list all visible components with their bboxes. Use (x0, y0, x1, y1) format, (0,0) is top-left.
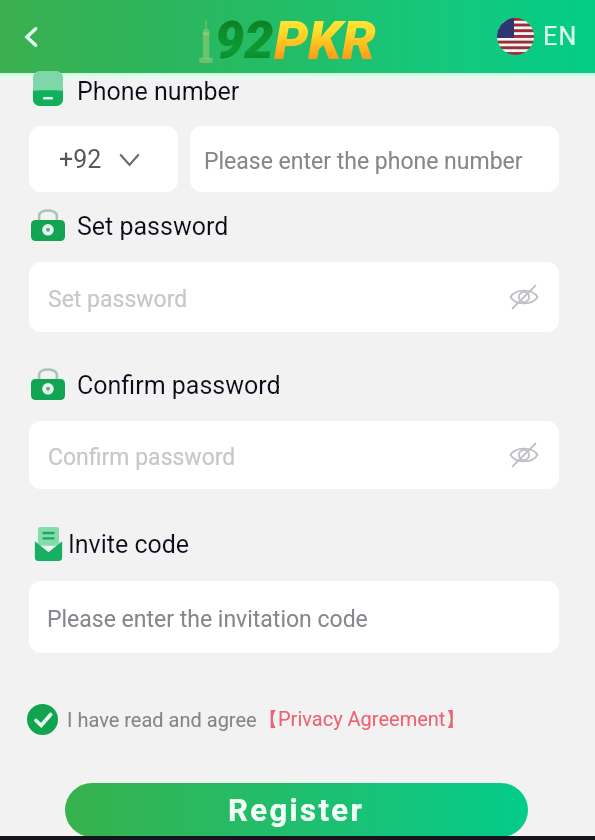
staticText: Register (228, 792, 365, 828)
button[interactable]: EN (497, 18, 578, 55)
button[interactable]: +92 (29, 126, 178, 192)
staticText: +92 (59, 145, 102, 174)
button[interactable]: Please enter the invitation code (29, 581, 559, 653)
button[interactable]: Register (65, 783, 528, 837)
button[interactable]: Confirm password (29, 421, 559, 489)
button[interactable]: 【Privacy Agreement】 (258, 707, 466, 732)
button[interactable]: Toggle password visibility (507, 280, 541, 314)
staticText: Set password (48, 286, 188, 313)
staticText: Set password (77, 212, 229, 241)
button[interactable]: I have read and agree (27, 704, 466, 735)
staticText: I have read and agree (67, 708, 257, 731)
button[interactable]: Toggle password visibility (507, 438, 541, 472)
staticText: Confirm password (48, 444, 236, 471)
staticText: Phone number (77, 77, 240, 106)
staticText: Please enter the invitation code (47, 606, 368, 633)
button[interactable]: Please enter the phone number (190, 126, 559, 192)
staticText: EN (543, 22, 578, 51)
staticText: PKR (274, 9, 376, 72)
button[interactable]: Set password (29, 262, 559, 332)
staticText: Invite code (68, 530, 190, 559)
button[interactable]: Back (8, 14, 54, 60)
staticText: Please enter the phone number (204, 148, 523, 175)
staticText: 92 (215, 10, 274, 71)
staticText: Confirm password (77, 371, 281, 400)
